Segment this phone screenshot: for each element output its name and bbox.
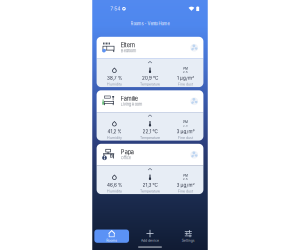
staticText: Temperature bbox=[140, 136, 160, 140]
staticText: 2.5 bbox=[183, 124, 188, 127]
staticText: Humidity bbox=[107, 82, 122, 86]
staticText: Living Room bbox=[121, 102, 143, 107]
staticText: Familie bbox=[121, 95, 138, 102]
staticText: 2.5 bbox=[183, 70, 188, 74]
staticText: Office bbox=[121, 155, 131, 160]
staticText: Settings bbox=[182, 239, 195, 243]
staticText: Rooms bbox=[106, 239, 117, 243]
staticText: 20,9 °C bbox=[142, 75, 158, 81]
staticText: Fine dust bbox=[178, 189, 193, 193]
staticText: 38,7 % bbox=[107, 75, 122, 81]
staticText: 7:54 bbox=[110, 6, 120, 12]
staticText: PM bbox=[183, 174, 188, 178]
staticText: 3 µg/m³ bbox=[177, 129, 195, 134]
staticText: 2.5 bbox=[183, 177, 188, 181]
button[interactable]: Settings bbox=[171, 229, 206, 243]
staticText: Humidity bbox=[107, 189, 122, 193]
staticText: Papa bbox=[121, 149, 134, 156]
staticText: Fine dust bbox=[178, 82, 193, 86]
button[interactable]: Familie bbox=[97, 90, 203, 141]
staticText: Eltern bbox=[121, 42, 135, 49]
staticText: Temperature bbox=[140, 189, 160, 193]
staticText: Fine dust bbox=[178, 136, 193, 140]
staticText: 41,2 % bbox=[107, 129, 121, 134]
button[interactable]: Add device bbox=[133, 229, 167, 243]
staticText: 22,1 °C bbox=[142, 129, 157, 134]
staticText: PM bbox=[183, 67, 188, 71]
staticText: Add device bbox=[141, 239, 159, 243]
button[interactable]: Eltern bbox=[97, 37, 203, 87]
staticText: 1 µg/m³ bbox=[177, 75, 194, 81]
staticText: 3 µg/m³ bbox=[177, 182, 195, 188]
staticText: Rooms - Vento Home bbox=[130, 21, 169, 26]
button[interactable]: Rooms bbox=[94, 229, 129, 243]
staticText: 21,3 °C bbox=[142, 182, 157, 188]
staticText: Bedroom bbox=[121, 48, 137, 53]
staticText: Temperature bbox=[140, 82, 160, 86]
staticText: Humidity bbox=[107, 136, 122, 140]
staticText: PM bbox=[183, 120, 188, 124]
button[interactable]: Papa bbox=[97, 144, 203, 194]
staticText: 46,6 % bbox=[107, 182, 122, 188]
